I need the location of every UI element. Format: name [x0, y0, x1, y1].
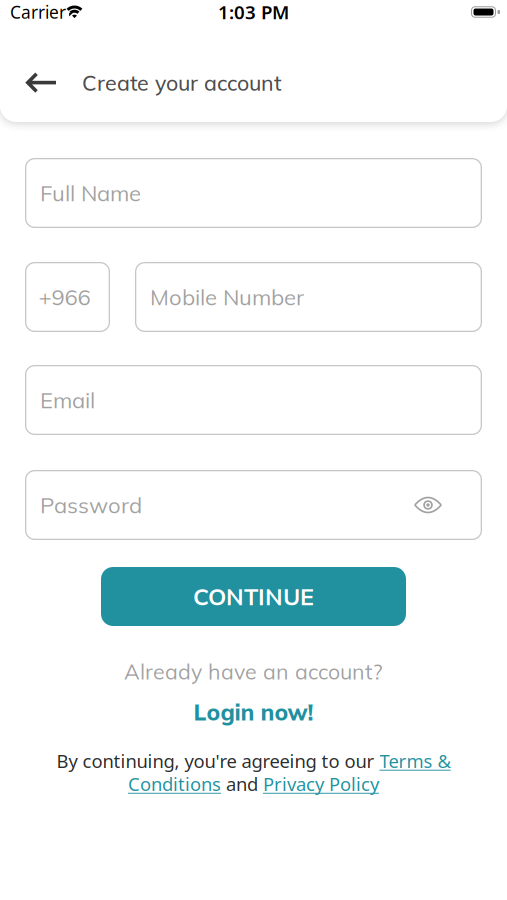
- button[interactable]: Terms &: [379, 748, 450, 773]
- staticText: Privacy Policy: [263, 771, 379, 796]
- staticText: Login now!: [193, 698, 313, 726]
- staticText: Mobile Number: [150, 283, 304, 311]
- button[interactable]: Privacy Policy: [263, 771, 379, 796]
- staticText: Email: [40, 386, 95, 414]
- button[interactable]: Email: [25, 365, 482, 435]
- staticText: and: [221, 771, 263, 796]
- staticText: Terms &: [379, 748, 450, 773]
- staticText: 1:03 PM: [218, 0, 289, 24]
- button[interactable]: Back: [0, 73, 58, 93]
- staticText: +966: [38, 283, 90, 311]
- staticText: Password: [40, 491, 142, 519]
- staticText: Carrier: [10, 0, 66, 23]
- button[interactable]: +966: [25, 262, 110, 332]
- staticText: CONTINUE: [193, 582, 314, 611]
- button[interactable]: Login now!: [193, 698, 313, 726]
- button[interactable]: Mobile Number: [135, 262, 482, 332]
- button[interactable]: Full Name: [25, 158, 482, 228]
- button[interactable]: CONTINUE: [101, 567, 406, 626]
- staticText: By continuing, you're agreeing to our: [56, 748, 379, 773]
- button[interactable]: Password: [25, 470, 482, 540]
- button[interactable]: Conditions: [128, 771, 221, 796]
- staticText: Conditions: [128, 771, 221, 796]
- staticText: Full Name: [40, 179, 141, 207]
- button[interactable]: Show password: [414, 496, 442, 514]
- staticText: Already have an account?: [124, 658, 383, 685]
- staticText: Create your account: [82, 69, 282, 96]
